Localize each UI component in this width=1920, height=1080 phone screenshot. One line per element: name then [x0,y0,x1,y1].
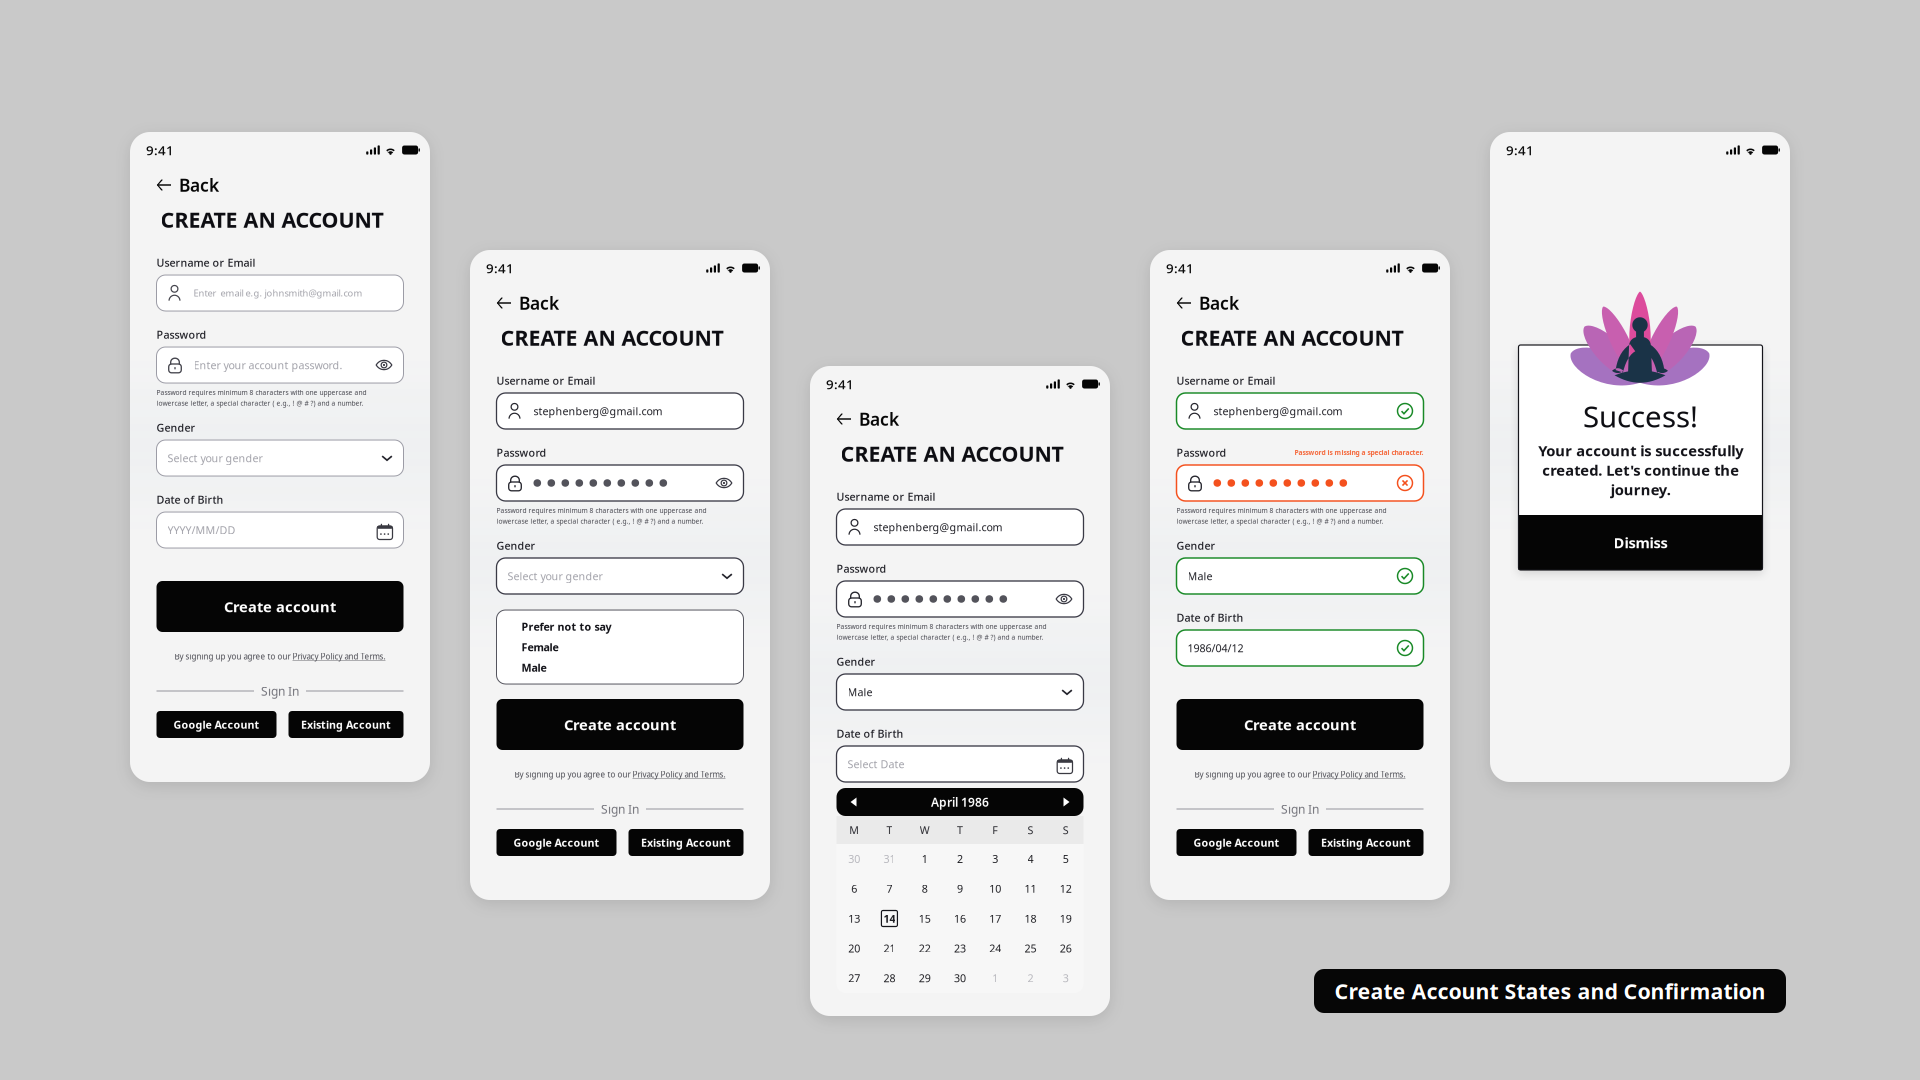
button[interactable]: By signing up you agree to our [1176,769,1423,780]
staticText: 9:41 [486,259,514,277]
staticText: lowercase letter, a special character ( … [156,399,363,408]
staticText: Female [521,640,558,654]
staticText: Date of Birth [156,492,223,507]
button[interactable]: Google Account [156,711,276,738]
staticText: Username or Email [1176,373,1275,388]
staticText: Date of Birth [836,726,903,741]
staticText: CREATE AN ACCOUNT [160,205,383,234]
button[interactable]: Username or Email [156,275,403,311]
staticText: April 1986 [931,794,989,810]
staticText: stephenberg@gmail.com [873,520,1002,534]
staticText: Sign In [261,683,299,699]
button[interactable]: Password [496,465,743,501]
button[interactable]: Prefer not to say [496,621,743,632]
button[interactable]: Gender [836,674,1083,710]
staticText: Password [156,327,206,342]
staticText: Gender [1176,538,1215,553]
staticText: Password requires minimum 8 characters w… [1176,506,1386,515]
staticText: Existing Account [641,835,731,850]
staticText: 21 [883,941,895,955]
button[interactable]: Username or Email [836,509,1083,545]
button[interactable]: Date of Birth [156,512,403,548]
staticText: CREATE AN ACCOUNT [840,439,1063,468]
button[interactable]: Create account [156,581,403,632]
staticText: Password requires minimum 8 characters w… [156,388,366,397]
staticText: Success! [1583,396,1698,435]
staticText: 16 [954,911,966,926]
button[interactable]: Gender [496,558,743,594]
staticText: 14 [883,911,895,926]
button[interactable]: Back [1176,295,1423,311]
staticText: 11 [1025,882,1037,896]
staticText: 31 [883,852,895,866]
staticText: 30 [848,852,860,866]
staticText: 9:41 [146,141,174,159]
staticText: 2 [957,852,963,866]
staticText: Enter your account password. [193,358,342,372]
staticText: T [957,823,963,837]
staticText: 30 [954,971,966,985]
button[interactable]: Existing Account [1308,829,1423,856]
staticText: Select your gender [167,451,262,465]
button[interactable]: Create account [496,699,743,750]
button[interactable]: Date of Birth [836,746,1083,782]
button[interactable]: Username or Email [496,393,743,429]
staticText: Select Date [847,757,904,771]
staticText: 18 [1025,911,1037,926]
staticText: 9 [957,882,963,896]
button[interactable]: Password [1176,465,1423,501]
staticText: 24 [989,941,1001,955]
button[interactable]: Create Account States and Confirmation [1314,969,1786,1013]
button[interactable]: Existing Account [628,829,743,856]
staticText: 17 [989,911,1001,926]
staticText: 10 [989,882,1001,896]
button[interactable]: Date of Birth [1176,630,1423,666]
button[interactable]: By signing up you agree to our [496,769,743,780]
button[interactable]: Next month [1053,791,1079,813]
button[interactable]: By signing up you agree to our [156,651,403,662]
button[interactable]: Back [156,177,403,193]
button[interactable]: Back [496,295,743,311]
button[interactable]: Dismiss [1518,515,1762,570]
staticText: By signing up you agree to our [514,769,632,780]
staticText: Dismiss [1613,533,1667,552]
button[interactable]: Password [836,581,1083,617]
button[interactable]: Create account [1176,699,1423,750]
staticText: 20 [848,941,860,955]
button[interactable]: Username or Email [1176,393,1423,429]
staticText: Google Account [173,717,259,732]
staticText: 2 [1028,971,1034,985]
staticText: Your account is successfully created. Le… [1538,441,1743,499]
staticText: Enter email e.g. johnsmith@gmail.com [193,287,362,299]
staticText: Privacy Policy and Terms. [292,651,385,662]
staticText: Existing Account [1321,835,1411,850]
staticText: 15 [919,911,931,926]
staticText: 22 [919,941,931,955]
button[interactable]: Existing Account [288,711,403,738]
button[interactable]: Back [836,411,1083,427]
staticText: Create account [224,597,336,616]
staticText: Sign In [1281,801,1319,817]
button[interactable]: Gender [156,440,403,476]
staticText: Google Account [1193,835,1279,850]
staticText: 9:41 [1166,259,1194,277]
staticText: 1986/04/12 [1187,641,1243,655]
button[interactable]: Male [496,662,743,673]
staticText: Back [519,291,559,314]
button[interactable]: Google Account [1176,829,1296,856]
button[interactable]: Password [156,347,403,383]
staticText: W [920,823,930,837]
staticText: 26 [1060,941,1072,955]
button[interactable]: Google Account [496,829,616,856]
staticText: 1 [992,971,998,985]
button[interactable]: Female [496,641,743,652]
staticText: Username or Email [836,489,935,504]
staticText: 6 [851,882,857,896]
staticText: Gender [496,538,535,553]
button[interactable]: Gender [1176,558,1423,594]
staticText: 4 [1028,852,1034,866]
staticText: Privacy Policy and Terms. [632,769,725,780]
staticText: Username or Email [496,373,595,388]
staticText: Back [859,407,899,430]
button[interactable]: Previous month [840,791,866,813]
